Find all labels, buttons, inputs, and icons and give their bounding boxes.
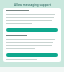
button[interactable] [6, 53, 58, 57]
button[interactable] [6, 8, 58, 62]
staticText: Allow messaging support [14, 3, 51, 7]
button[interactable] [6, 28, 58, 32]
